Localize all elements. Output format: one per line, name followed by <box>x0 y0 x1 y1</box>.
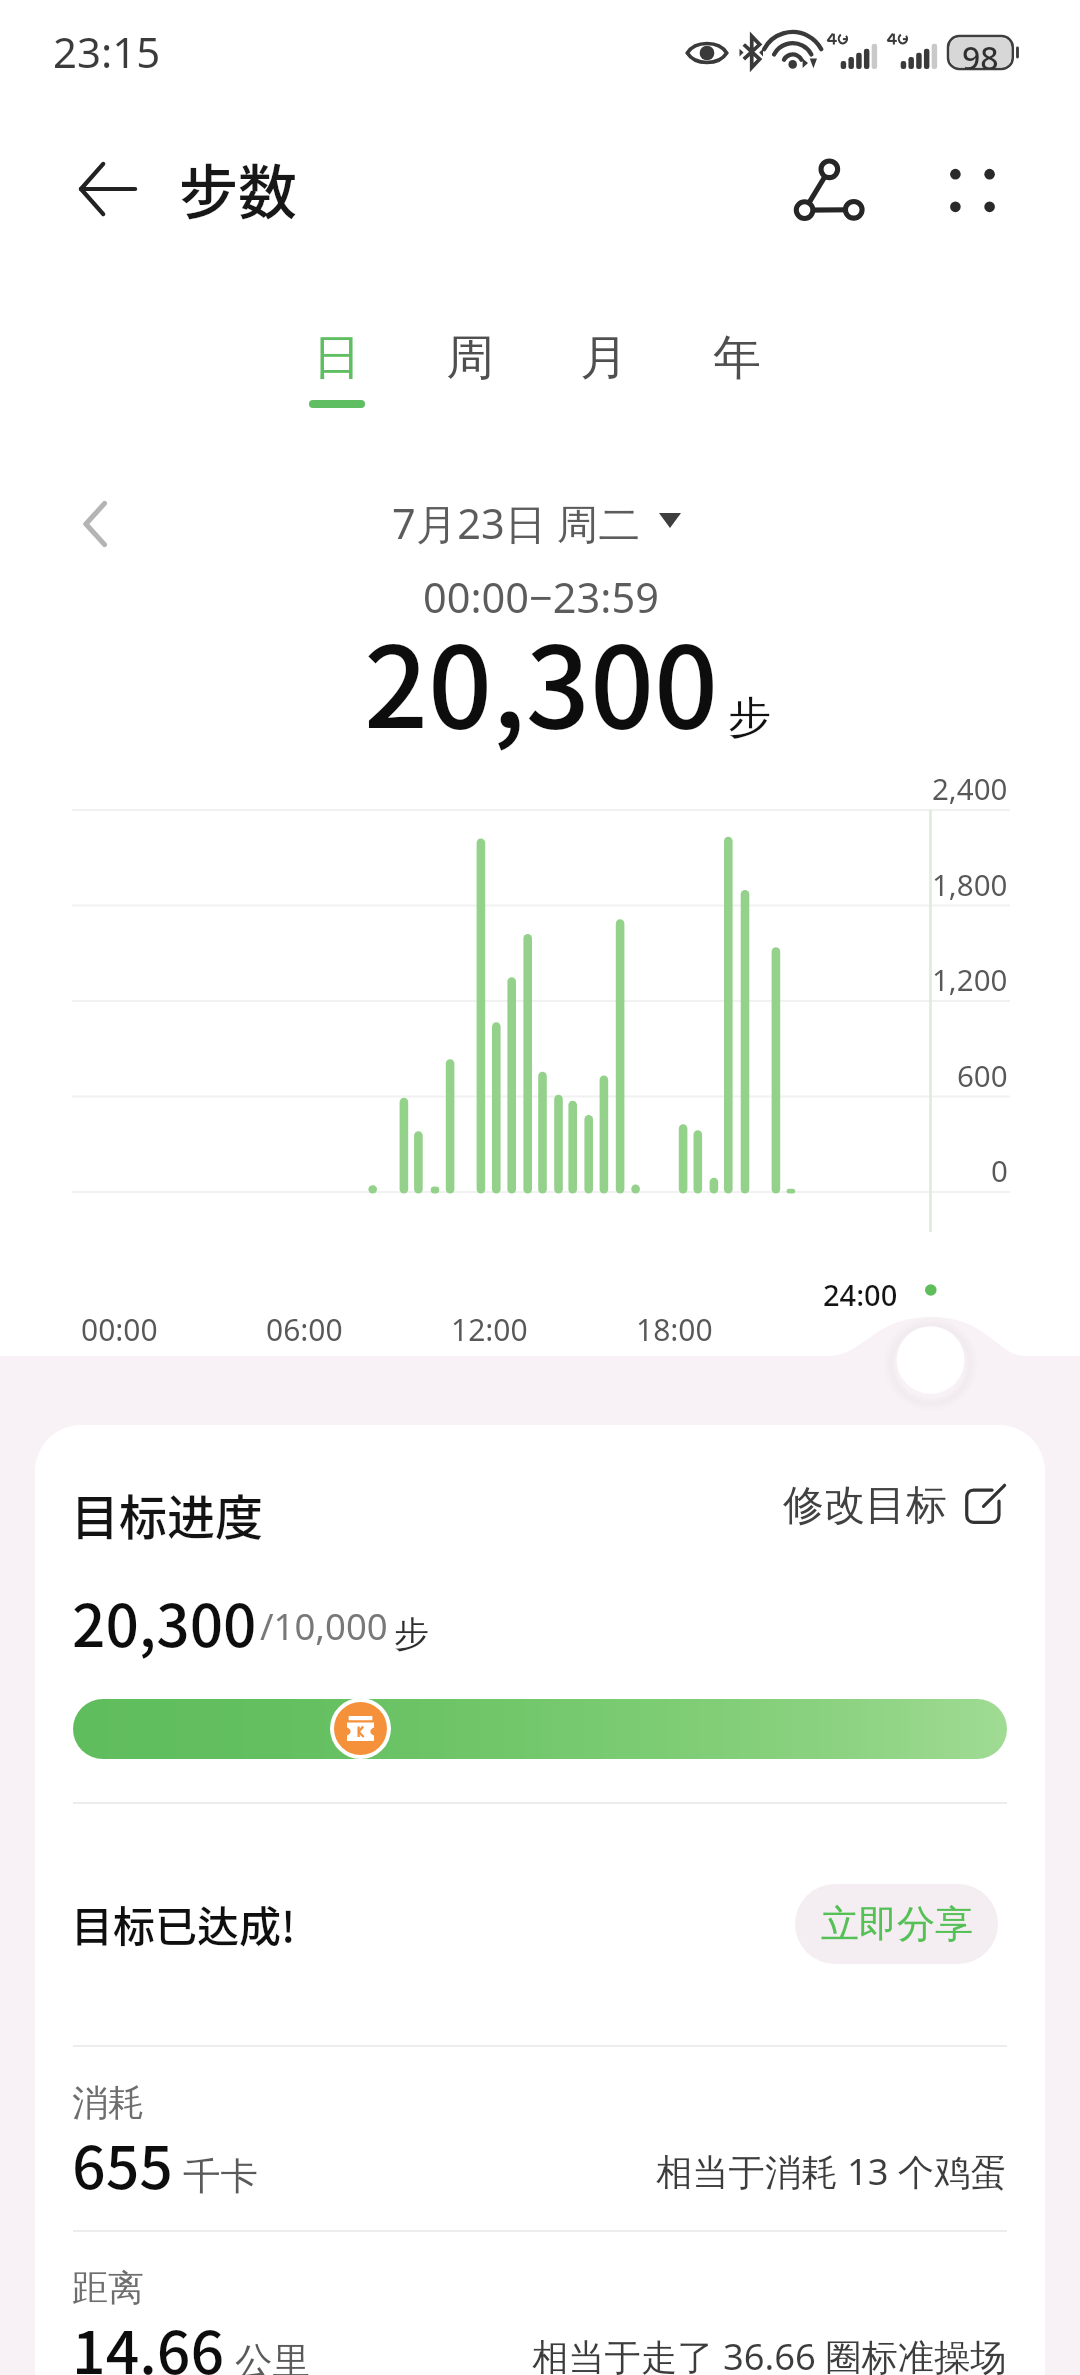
staticText: 千卡 <box>183 2153 258 2200</box>
button[interactable]: 修改目标 <box>779 1474 1045 1538</box>
button[interactable]: 日 <box>275 312 399 422</box>
button[interactable]: Share <box>777 138 881 242</box>
staticText: 12:00 <box>451 1309 528 1350</box>
button[interactable]: More options <box>920 138 1024 242</box>
staticText: 600 <box>957 1055 1008 1095</box>
staticText: 相当于消耗 13 个鸡蛋 <box>656 2146 1007 2196</box>
staticText: 18:00 <box>636 1309 713 1350</box>
button[interactable] <box>73 1699 1007 1759</box>
staticText: 06:00 <box>266 1309 343 1350</box>
staticText: 消耗 <box>72 2080 144 2125</box>
staticText: 距离 <box>72 2265 144 2310</box>
button[interactable]: 月 <box>542 312 666 422</box>
staticText: 0 <box>991 1150 1008 1190</box>
staticText: 1,200 <box>932 959 1008 999</box>
staticText: 目标已达成! <box>71 1893 296 1954</box>
button[interactable]: 年 <box>675 312 799 422</box>
button[interactable]: Previous day <box>58 487 132 561</box>
staticText: 655 <box>72 2121 173 2206</box>
staticText: 20,300 <box>364 597 719 760</box>
staticText: 23:15 <box>53 23 161 80</box>
staticText: 00:00−23:59 <box>423 569 659 626</box>
staticText: 1,800 <box>932 864 1008 904</box>
button[interactable]: 立即分享 <box>795 1884 998 1964</box>
staticText: 月 <box>580 328 628 388</box>
staticText: 00:00 <box>81 1309 158 1350</box>
staticText: 24:00 <box>823 1275 898 1314</box>
staticText: 年 <box>713 328 761 388</box>
staticText: 立即分享 <box>821 1900 973 1948</box>
staticText: 2,400 <box>932 768 1008 808</box>
staticText: 目标进度 <box>71 1479 264 1549</box>
button[interactable]: Back <box>55 141 159 237</box>
button[interactable]: 消耗 <box>35 2080 1045 2250</box>
staticText: 20,300 <box>72 1579 257 1664</box>
button[interactable]: 距离 <box>35 2265 1045 2375</box>
staticText: 日 <box>313 328 361 388</box>
button[interactable]: 周 <box>408 312 532 422</box>
staticText: 相当于走了 36.66 圈标准操场 <box>532 2331 1007 2375</box>
staticText: 公里 <box>235 2338 310 2375</box>
staticText: 98 <box>962 36 999 69</box>
staticText: 7月23日 周二 <box>392 495 641 552</box>
staticText: 周 <box>446 328 494 388</box>
staticText: 修改目标 <box>783 1480 947 1532</box>
staticText: 14.66 <box>72 2306 225 2375</box>
staticText: 步 <box>728 691 771 745</box>
staticText: /10,000 <box>260 1601 388 1651</box>
staticText: 步 <box>394 1612 429 1656</box>
staticText: 步数 <box>179 146 298 231</box>
